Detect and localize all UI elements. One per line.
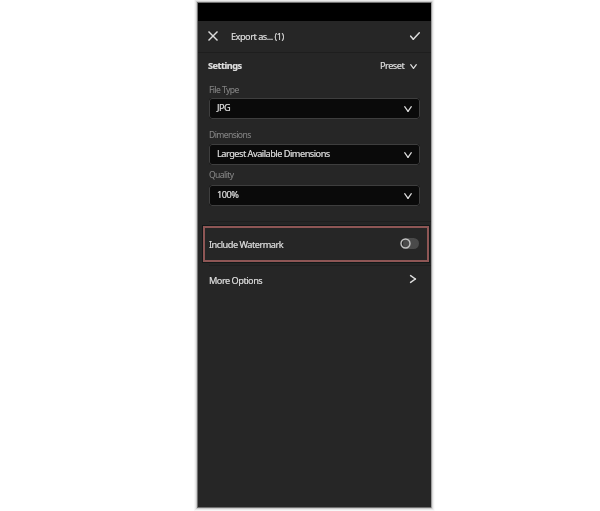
button[interactable]: JPG: [209, 98, 420, 119]
button[interactable]: Include Watermark: [202, 225, 430, 263]
staticText: More Options: [209, 274, 263, 287]
staticText: Preset: [380, 59, 405, 72]
staticText: Dimensions: [209, 129, 251, 141]
staticText: Quality: [209, 169, 234, 181]
button[interactable]: More Options: [198, 269, 431, 293]
staticText: JPG: [217, 101, 231, 114]
button[interactable]: 100%: [209, 185, 420, 206]
button[interactable]: Preset: [375, 53, 423, 73]
button[interactable]: Include Watermark toggle: [403, 238, 419, 249]
staticText: Include Watermark: [209, 238, 284, 251]
button[interactable]: Close: [202, 25, 224, 47]
staticText: Largest Available Dimensions: [217, 147, 330, 160]
staticText: Export as... (1): [231, 30, 284, 43]
button[interactable]: Done: [404, 25, 426, 47]
staticText: File Type: [209, 84, 239, 96]
staticText: 100%: [217, 188, 239, 201]
staticText: Settings: [208, 59, 242, 72]
button[interactable]: Largest Available Dimensions: [209, 144, 420, 165]
